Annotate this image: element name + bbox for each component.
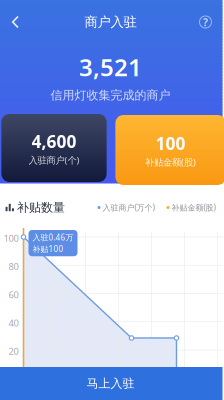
button[interactable]: 100 [115, 115, 224, 185]
staticText: 商户入驻 [84, 14, 136, 30]
staticText: 入驻商户(万个) [102, 202, 154, 213]
button[interactable]: 4,600 [1, 114, 106, 182]
staticText: 入驻商户(个) [28, 154, 79, 166]
staticText: ? [203, 15, 208, 29]
staticText: 补贴100 [32, 244, 63, 254]
staticText: 100 [155, 132, 185, 155]
button[interactable]: 马上入驻 [0, 367, 222, 400]
staticText: 3,521 [79, 51, 142, 83]
staticText: 马上入驻 [86, 376, 134, 391]
staticText: 20 [8, 345, 18, 357]
staticText: 40 [8, 317, 18, 329]
button[interactable]: 帮助 [192, 9, 218, 35]
staticText: 补贴金额(股) [171, 202, 215, 213]
staticText: 100 [3, 232, 18, 244]
staticText: 4,600 [31, 130, 76, 153]
button[interactable]: 返回 [2, 9, 28, 35]
staticText: 补贴金额(股) [145, 156, 196, 168]
staticText: 信用灯收集完成的商户 [50, 88, 170, 103]
staticText: 入驻0.46万 [32, 232, 73, 243]
staticText: 60 [8, 288, 18, 301]
staticText: 80 [8, 260, 18, 273]
staticText: 补贴数量 [17, 200, 65, 215]
